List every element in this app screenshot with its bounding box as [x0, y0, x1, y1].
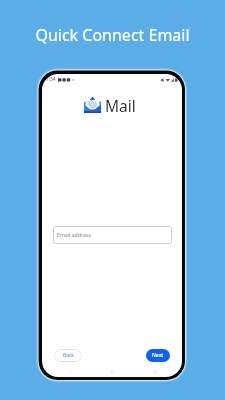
staticText: Back [63, 352, 74, 359]
staticText: Next [152, 352, 164, 359]
button[interactable]: Back [64, 367, 74, 377]
button[interactable]: Home [107, 367, 117, 377]
staticText: Quick Connect Email [0, 24, 225, 46]
staticText: Email address [57, 231, 91, 238]
button[interactable]: Recent apps [150, 367, 160, 377]
button[interactable]: Back [54, 349, 82, 362]
staticText: 7:34 [46, 76, 56, 83]
button[interactable]: Next [146, 349, 170, 362]
button[interactable]: Email address [53, 226, 172, 244]
staticText: Mail [105, 95, 136, 116]
